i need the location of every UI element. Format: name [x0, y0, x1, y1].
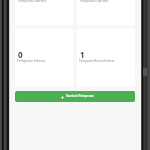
staticText: Pelaporan Diterima — [18, 0, 47, 3]
staticText: 0 — [18, 49, 23, 60]
staticText: Pelaporan Selesai — [17, 58, 45, 63]
staticText: 1 — [80, 49, 85, 60]
staticText: Pelaporan Belum Selesai — [79, 59, 115, 63]
button[interactable]: Pelaporan Diterima — [15, 0, 73, 25]
button[interactable]: Tambah Pelaporan — [15, 91, 135, 102]
button[interactable]: 0 — [15, 29, 73, 87]
button[interactable]: 1 — [77, 29, 135, 87]
staticText: Tambah Pelaporan — [66, 94, 94, 98]
staticText: Pelaporan Diproses — [80, 0, 109, 3]
button[interactable]: Pelaporan Diproses — [77, 0, 135, 25]
